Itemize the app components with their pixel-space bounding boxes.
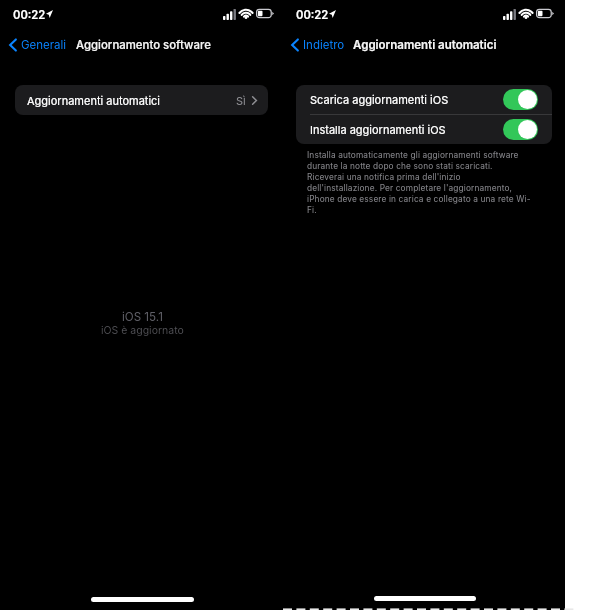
- staticText: Sì: [236, 94, 246, 107]
- staticText: Aggiornamento software: [76, 38, 211, 52]
- button[interactable]: Scarica aggiornamenti iOS: [503, 89, 538, 110]
- button[interactable]: Indietro: [291, 38, 345, 52]
- staticText: 00:22: [296, 8, 329, 22]
- staticText: iOS è aggiornato: [101, 324, 184, 337]
- staticText: Scarica aggiornamenti iOS: [310, 93, 449, 106]
- button[interactable]: Scarica aggiornamenti iOS: [296, 85, 552, 114]
- button[interactable]: Installa aggiornamenti iOS: [503, 119, 538, 140]
- staticText: Aggiornamenti automatici: [27, 94, 161, 107]
- staticText: Installa automaticamente gli aggiornamen…: [307, 150, 531, 215]
- staticText: Aggiornamenti automatici: [353, 38, 497, 52]
- staticText: 00:22: [13, 8, 46, 22]
- staticText: Installa aggiornamenti iOS: [310, 123, 446, 136]
- staticText: Generali: [21, 38, 67, 52]
- staticText: iOS 15.1: [122, 310, 163, 324]
- button[interactable]: Generali: [9, 38, 67, 52]
- button[interactable]: Aggiornamenti automatici: [15, 85, 268, 115]
- button[interactable]: Installa aggiornamenti iOS: [296, 115, 552, 144]
- staticText: Indietro: [303, 38, 345, 52]
